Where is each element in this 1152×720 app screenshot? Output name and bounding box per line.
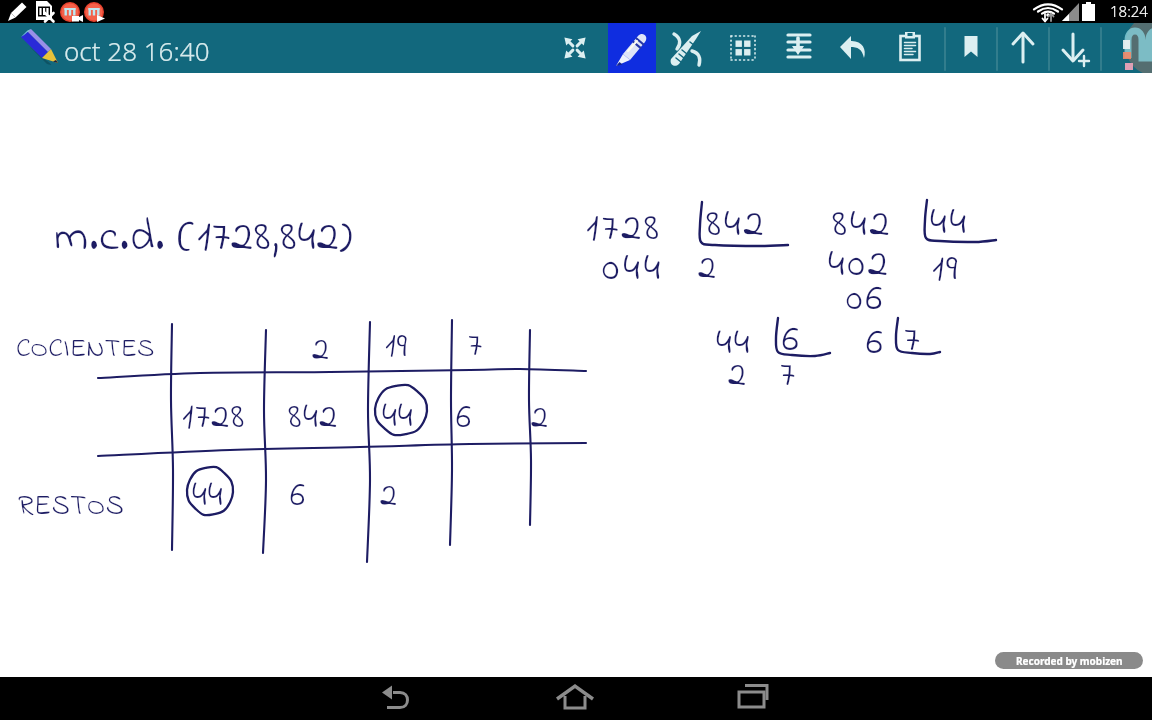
staticText: 18:24 bbox=[1110, 1, 1148, 21]
button[interactable]: Undo bbox=[831, 23, 879, 73]
button[interactable]: Page up bbox=[999, 23, 1047, 73]
staticText: 19 bbox=[385, 323, 409, 373]
staticText: 842 bbox=[706, 196, 767, 254]
button[interactable]: Add page below bbox=[1051, 23, 1099, 73]
staticText: RESTOS bbox=[18, 487, 125, 528]
staticText: 7 bbox=[780, 350, 795, 403]
staticText: 6 bbox=[290, 472, 305, 522]
staticText: 2 bbox=[312, 326, 329, 376]
staticText: 19 bbox=[932, 242, 960, 297]
staticText: 1728 bbox=[182, 392, 246, 445]
staticText: COCIENTES bbox=[16, 330, 155, 369]
staticText: 44 bbox=[930, 194, 969, 252]
staticText: Recorded by mobizen bbox=[1016, 654, 1123, 668]
staticText: 7 bbox=[904, 313, 920, 368]
staticText: 6 bbox=[456, 394, 471, 444]
staticText: 1728 bbox=[586, 200, 663, 258]
button[interactable]: Recent apps bbox=[715, 677, 795, 720]
button[interactable]: Eraser bbox=[664, 23, 712, 73]
button[interactable]: Insert space bbox=[775, 23, 823, 73]
staticText: 7 bbox=[468, 322, 483, 372]
button[interactable]: Bookmark bbox=[947, 23, 995, 73]
staticText: 2 bbox=[380, 472, 397, 522]
staticText: 2 bbox=[698, 243, 716, 296]
button[interactable]: Pen bbox=[608, 23, 656, 73]
staticText: 842 bbox=[288, 392, 339, 445]
staticText: 44 bbox=[382, 391, 414, 444]
button[interactable]: Fullscreen bbox=[552, 23, 600, 73]
staticText: 06 bbox=[846, 272, 886, 327]
staticText: 2 bbox=[531, 394, 548, 444]
staticText: 6 bbox=[866, 316, 883, 371]
staticText: 402 bbox=[828, 236, 891, 294]
button[interactable]: Clipboard bbox=[887, 23, 935, 73]
staticText: 6 bbox=[782, 313, 799, 368]
staticText: 2 bbox=[728, 350, 746, 403]
staticText: 44 bbox=[192, 470, 224, 523]
button[interactable]: Back bbox=[355, 677, 435, 720]
button[interactable]: Home bbox=[535, 677, 615, 720]
staticText: m.c.d. (1728,842) bbox=[54, 206, 354, 270]
staticText: 44 bbox=[716, 316, 752, 371]
button[interactable]: Grid bbox=[720, 23, 768, 73]
staticText: oct 28 16:40 bbox=[64, 33, 210, 68]
staticText: 044 bbox=[602, 240, 665, 298]
staticText: 842 bbox=[832, 196, 893, 254]
